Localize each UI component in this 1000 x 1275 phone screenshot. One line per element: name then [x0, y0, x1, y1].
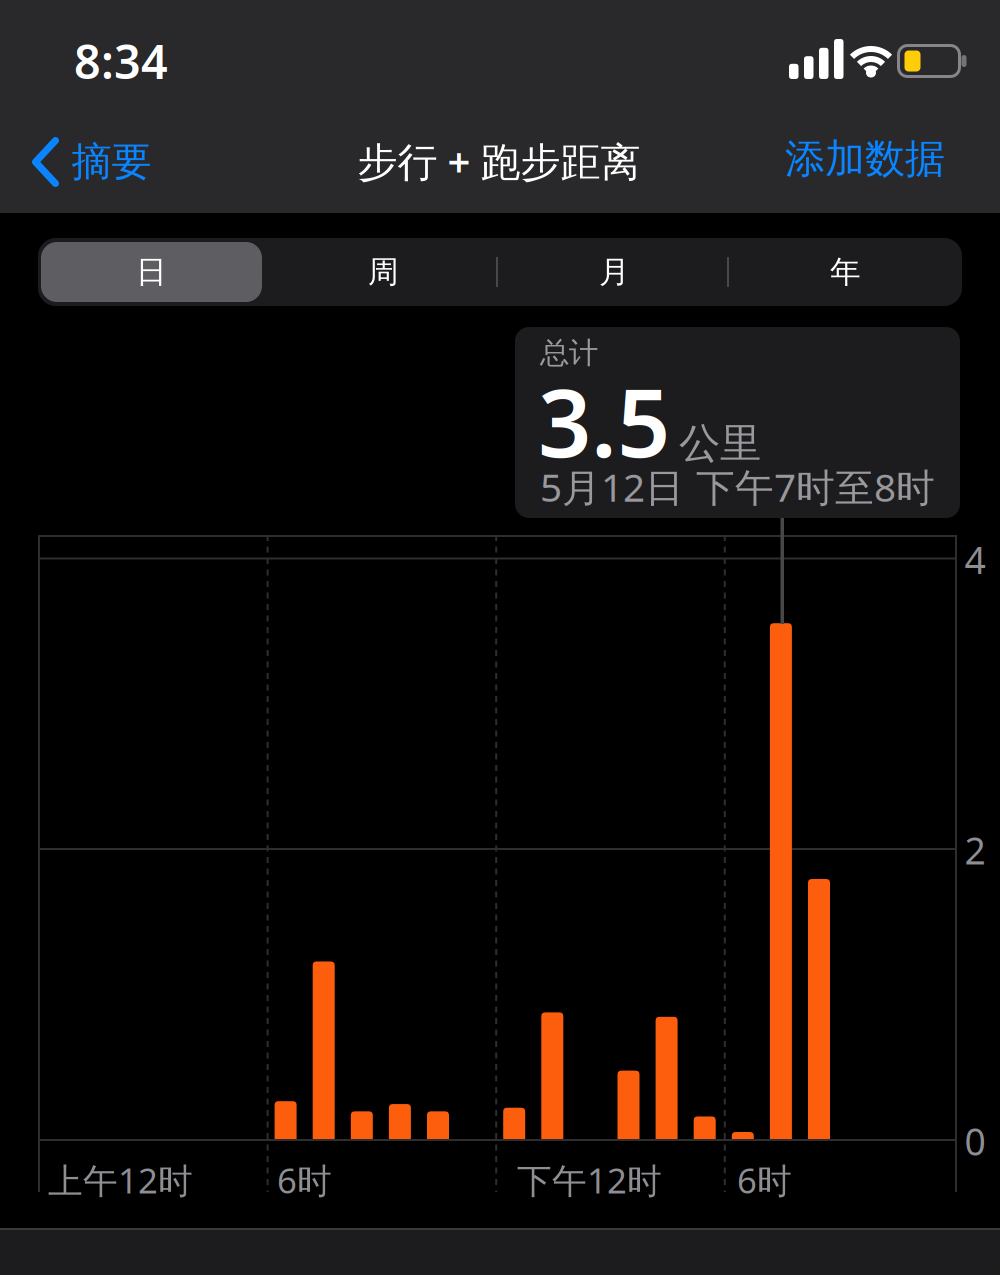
staticText: 公里 — [679, 418, 761, 469]
staticText: 年 — [830, 253, 861, 291]
button[interactable]: 周 — [271, 242, 496, 302]
staticText: 摘要 — [71, 137, 151, 186]
staticText: 上午12时 — [48, 1157, 193, 1203]
button[interactable]: 日 — [41, 242, 262, 302]
staticText: 6时 — [277, 1157, 332, 1203]
button[interactable]: 月 — [502, 242, 727, 302]
staticText: 0 — [964, 1116, 985, 1166]
button[interactable]: 添加数据 — [785, 134, 945, 183]
staticText: 5月12日 下午7时至8时 — [540, 461, 935, 512]
staticText: 8:34 — [74, 30, 168, 92]
staticText: 4 — [964, 535, 985, 584]
staticText: 日 — [136, 253, 167, 291]
staticText: 添加数据 — [785, 134, 945, 183]
button[interactable]: 摘要 — [32, 137, 151, 186]
staticText: 周 — [368, 253, 399, 291]
staticText: 3.5 — [538, 359, 670, 483]
staticText: 2 — [964, 825, 985, 875]
button[interactable]: 年 — [733, 242, 958, 302]
staticText: 步行 + 跑步距离 — [357, 134, 640, 187]
staticText: 6时 — [737, 1157, 792, 1203]
staticText: 月 — [599, 253, 630, 291]
staticText: 下午12时 — [517, 1157, 662, 1203]
staticText: 总计 — [540, 335, 598, 371]
